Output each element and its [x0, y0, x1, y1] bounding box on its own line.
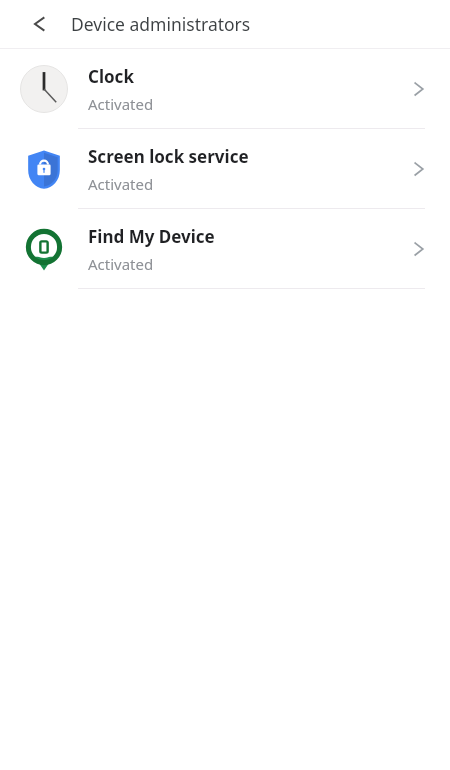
button[interactable]: Clock — [0, 49, 450, 129]
staticText: Clock — [88, 65, 134, 88]
button[interactable]: Screen lock service — [0, 129, 450, 209]
button[interactable]: Find My Device — [0, 209, 450, 289]
staticText: Activated — [88, 254, 154, 274]
button[interactable]: Back — [16, 9, 60, 39]
staticText: Activated — [88, 174, 154, 194]
staticText: Device administrators — [71, 12, 251, 36]
staticText: Find My Device — [88, 225, 215, 248]
staticText: Screen lock service — [88, 145, 249, 168]
staticText: Activated — [88, 94, 154, 114]
